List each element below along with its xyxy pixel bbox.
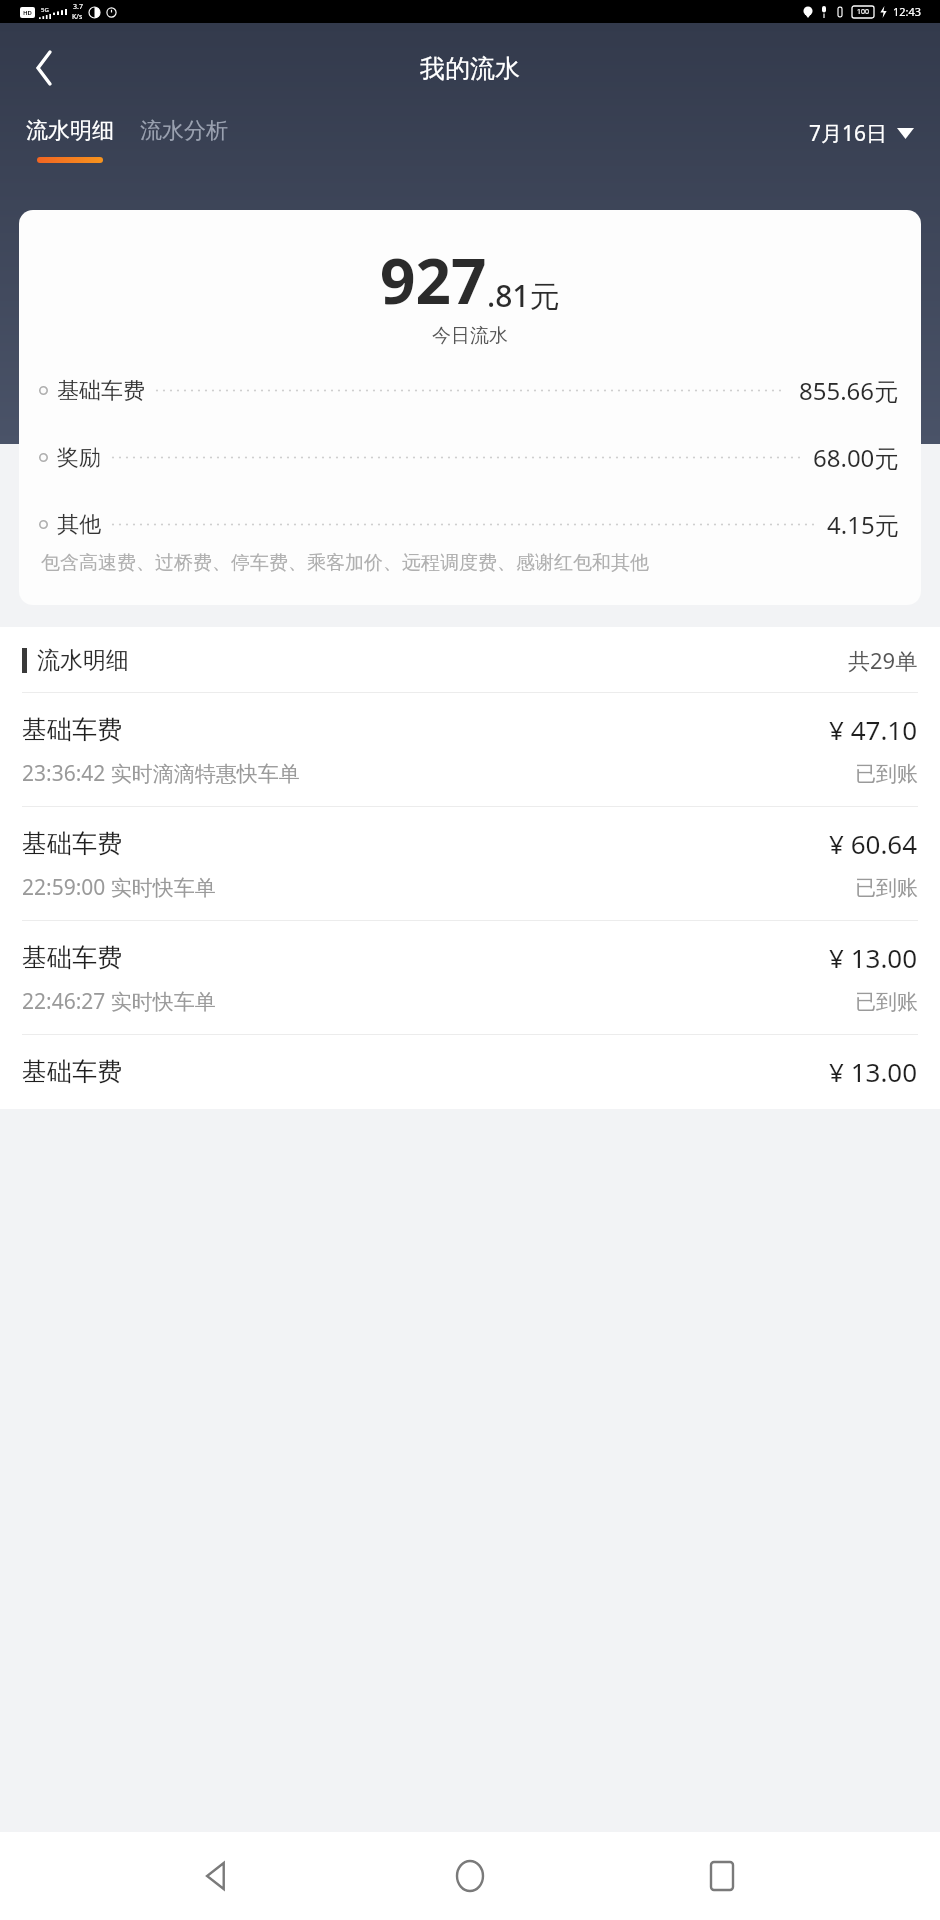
staticText: 927 — [380, 238, 487, 322]
staticText: 7月16日 — [809, 119, 888, 148]
staticText: 已到账 — [855, 989, 918, 1015]
button[interactable]: 基础车费 — [0, 693, 940, 807]
staticText: 流水分析 — [140, 117, 228, 145]
staticText: 基础车费 — [22, 942, 122, 973]
staticText: ¥ 60.64 — [829, 826, 918, 861]
staticText: 已到账 — [855, 875, 918, 901]
staticText: 流水明细 — [26, 117, 114, 145]
button[interactable]: Home — [436, 1842, 504, 1910]
staticText: 今日流水 — [19, 324, 921, 348]
button[interactable]: Back — [184, 1842, 252, 1910]
staticText: 22:46:27 实时快车单 — [22, 987, 216, 1016]
staticText: 基础车费 — [22, 714, 122, 745]
staticText: 12:43 — [893, 4, 922, 19]
button[interactable]: 流水分析 — [138, 117, 230, 145]
staticText: 100 — [857, 7, 870, 17]
button[interactable]: 7月16日 — [809, 119, 914, 148]
staticText: 共29单 — [848, 645, 918, 675]
staticText: 已到账 — [855, 761, 918, 787]
staticText: ¥ 13.00 — [829, 1054, 918, 1089]
staticText: 855.66元 — [799, 374, 899, 407]
button[interactable]: Recents — [688, 1842, 756, 1910]
staticText: 23:36:42 实时滴滴特惠快车单 — [22, 759, 300, 788]
button[interactable]: 基础车费 — [0, 807, 940, 921]
staticText: 其他 — [57, 511, 101, 539]
staticText: 22:59:00 实时快车单 — [22, 873, 216, 902]
button[interactable]: Back — [22, 45, 68, 91]
staticText: 基础车费 — [22, 828, 122, 859]
staticText: 5G — [41, 6, 49, 14]
staticText: 基础车费 — [22, 1056, 122, 1087]
staticText: 4.15元 — [827, 508, 899, 541]
staticText: 3.7 — [73, 2, 83, 12]
staticText: ¥ 13.00 — [829, 940, 918, 975]
staticText: 奖励 — [57, 444, 101, 472]
staticText: K/s — [72, 12, 83, 22]
staticText: HD — [23, 9, 32, 17]
staticText: 包含高速费、过桥费、停车费、乘客加价、远程调度费、感谢红包和其他 — [41, 551, 649, 575]
staticText: 68.00元 — [813, 441, 899, 474]
button[interactable]: 基础车费 — [0, 1035, 940, 1109]
staticText: 基础车费 — [57, 377, 145, 405]
staticText: 流水明细 — [37, 646, 129, 675]
staticText: ¥ 47.10 — [829, 712, 918, 747]
staticText: .81元 — [487, 275, 560, 316]
button[interactable]: 基础车费 — [0, 921, 940, 1035]
button[interactable]: 流水明细 — [24, 117, 116, 163]
staticText: 我的流水 — [420, 53, 520, 84]
